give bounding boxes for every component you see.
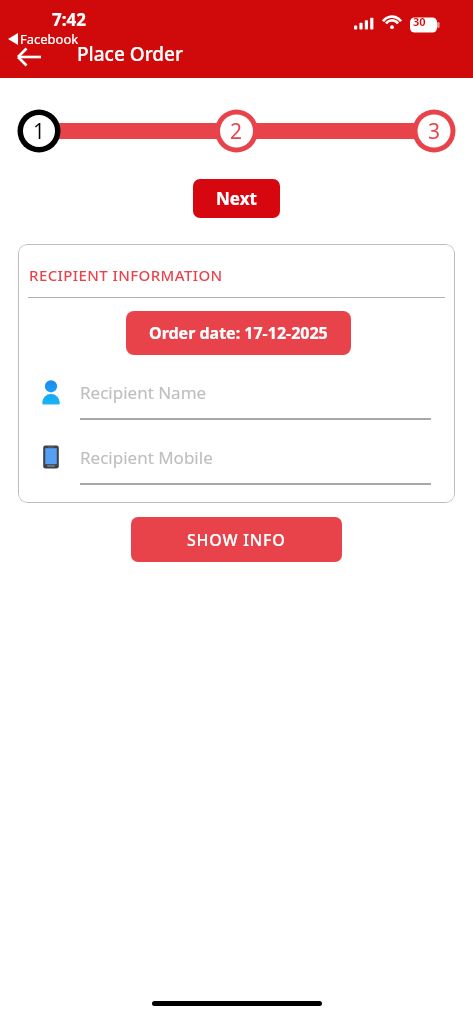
button[interactable]: Order date: 17-12-2025 [126,311,351,355]
button[interactable]: Back to Facebook [8,30,79,48]
staticText: 3 [428,117,441,146]
button[interactable]: Recipient Mobile [18,440,455,485]
button[interactable]: 3 [413,117,455,146]
button[interactable]: 1 [18,117,60,146]
button[interactable]: Next [193,179,280,218]
staticText: Order date: 17-12-2025 [149,322,328,344]
staticText: 2 [230,117,243,146]
staticText: Facebook [20,30,79,48]
staticText: RECIPIENT INFORMATION [29,265,223,285]
button[interactable]: Back [10,38,48,76]
staticText: Place Order [77,41,184,67]
staticText: SHOW INFO [187,529,286,551]
staticText: Recipient Name [80,381,207,404]
staticText: Recipient Mobile [80,446,213,469]
staticText: 1 [33,117,46,146]
button[interactable]: 2 [215,117,257,146]
staticText: Next [216,187,257,210]
staticText: 7:42 [52,8,86,31]
button[interactable]: SHOW INFO [131,517,342,562]
button[interactable]: Recipient Name [18,375,455,420]
staticText: 30 [413,14,426,29]
